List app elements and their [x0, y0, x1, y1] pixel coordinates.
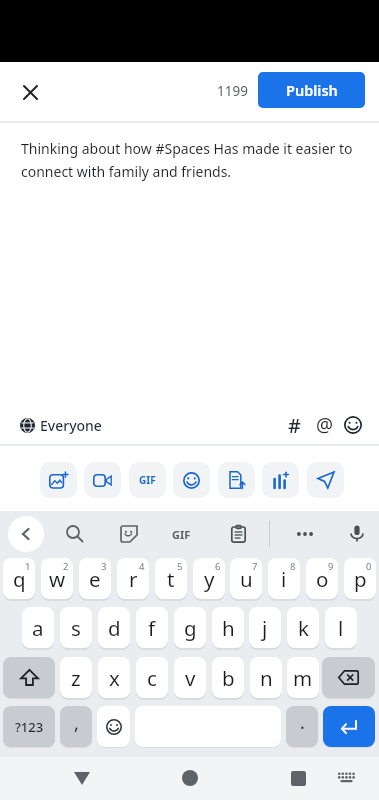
button[interactable]: [61, 520, 89, 548]
button[interactable]: [3, 657, 55, 698]
button[interactable]: ?123: [3, 706, 55, 747]
button[interactable]: t: [155, 558, 187, 599]
staticText: 4: [139, 560, 145, 573]
button[interactable]: [66, 762, 98, 794]
button[interactable]: [262, 462, 299, 498]
button[interactable]: [322, 657, 375, 698]
button[interactable]: a: [22, 607, 54, 648]
staticText: ?123: [15, 718, 44, 736]
button[interactable]: GIF: [129, 462, 166, 498]
staticText: e: [89, 565, 101, 593]
staticText: n: [260, 664, 273, 692]
staticText: .: [300, 710, 305, 735]
button[interactable]: d: [98, 607, 130, 648]
button[interactable]: [291, 520, 319, 548]
staticText: 9: [328, 560, 334, 573]
button[interactable]: [14, 76, 46, 108]
staticText: c: [147, 664, 157, 692]
button[interactable]: l: [325, 607, 357, 648]
button[interactable]: [8, 516, 44, 552]
button[interactable]: x: [98, 657, 130, 698]
button[interactable]: Publish: [258, 72, 365, 108]
staticText: 1: [25, 560, 31, 573]
button[interactable]: y: [193, 558, 225, 599]
staticText: f: [148, 614, 156, 642]
button[interactable]: r: [117, 558, 149, 599]
button[interactable]: f: [136, 607, 168, 648]
staticText: x: [109, 664, 120, 692]
staticText: i: [281, 565, 287, 593]
staticText: t: [167, 565, 175, 593]
staticText: w: [49, 565, 66, 593]
button[interactable]: #: [280, 411, 308, 439]
button[interactable]: e: [79, 558, 111, 599]
staticText: GIF: [139, 473, 156, 487]
button[interactable]: n: [250, 657, 282, 698]
staticText: 0: [366, 560, 372, 573]
staticText: p: [354, 565, 367, 593]
button[interactable]: .: [286, 706, 318, 747]
button[interactable]: [282, 762, 314, 794]
staticText: g: [184, 614, 197, 642]
button[interactable]: z: [60, 657, 92, 698]
button[interactable]: [334, 766, 358, 790]
button[interactable]: j: [249, 607, 281, 648]
button[interactable]: [115, 520, 143, 548]
button[interactable]: ,: [60, 706, 92, 747]
staticText: l: [338, 614, 344, 642]
staticText: ,: [74, 711, 79, 736]
staticText: v: [185, 664, 196, 692]
button[interactable]: @: [311, 411, 339, 439]
staticText: r: [129, 565, 138, 593]
button[interactable]: [218, 462, 255, 498]
staticText: 1199: [217, 82, 248, 100]
button[interactable]: GIF: [167, 520, 195, 548]
staticText: y: [204, 565, 215, 593]
button[interactable]: [224, 520, 252, 548]
staticText: s: [71, 614, 81, 642]
button[interactable]: c: [136, 657, 168, 698]
button[interactable]: [339, 411, 367, 439]
button[interactable]: [40, 462, 77, 498]
staticText: u: [240, 565, 253, 593]
button[interactable]: s: [60, 607, 92, 648]
button[interactable]: [97, 706, 130, 747]
staticText: d: [108, 614, 121, 642]
button[interactable]: [84, 462, 121, 498]
button[interactable]: o: [306, 558, 338, 599]
staticText: 7: [252, 560, 258, 573]
staticText: a: [32, 614, 44, 642]
staticText: 3: [101, 560, 107, 573]
button[interactable]: b: [212, 657, 244, 698]
button[interactable]: m: [287, 657, 319, 698]
staticText: #: [288, 412, 301, 439]
staticText: q: [13, 565, 26, 593]
button[interactable]: k: [287, 607, 319, 648]
staticText: 8: [290, 560, 296, 573]
button[interactable]: [173, 462, 210, 498]
button[interactable]: Everyone: [12, 410, 110, 440]
button[interactable]: g: [174, 607, 206, 648]
button[interactable]: p: [344, 558, 376, 599]
staticText: o: [316, 565, 329, 593]
staticText: Everyone: [40, 416, 102, 435]
button[interactable]: [343, 520, 371, 548]
staticText: b: [222, 664, 235, 692]
button[interactable]: q: [3, 558, 35, 599]
button[interactable]: [174, 762, 206, 794]
staticText: 5: [177, 560, 183, 573]
staticText: k: [298, 614, 309, 642]
button[interactable]: u: [230, 558, 262, 599]
staticText: Thinking about how #Spaces Has made it e…: [21, 139, 353, 181]
button[interactable]: v: [174, 657, 206, 698]
button[interactable]: h: [212, 607, 244, 648]
button[interactable]: [307, 462, 344, 498]
staticText: j: [262, 614, 268, 642]
staticText: @: [316, 412, 334, 438]
button[interactable]: w: [41, 558, 73, 599]
button[interactable]: i: [268, 558, 300, 599]
staticText: h: [222, 614, 235, 642]
staticText: z: [71, 664, 81, 692]
button[interactable]: [323, 706, 375, 747]
